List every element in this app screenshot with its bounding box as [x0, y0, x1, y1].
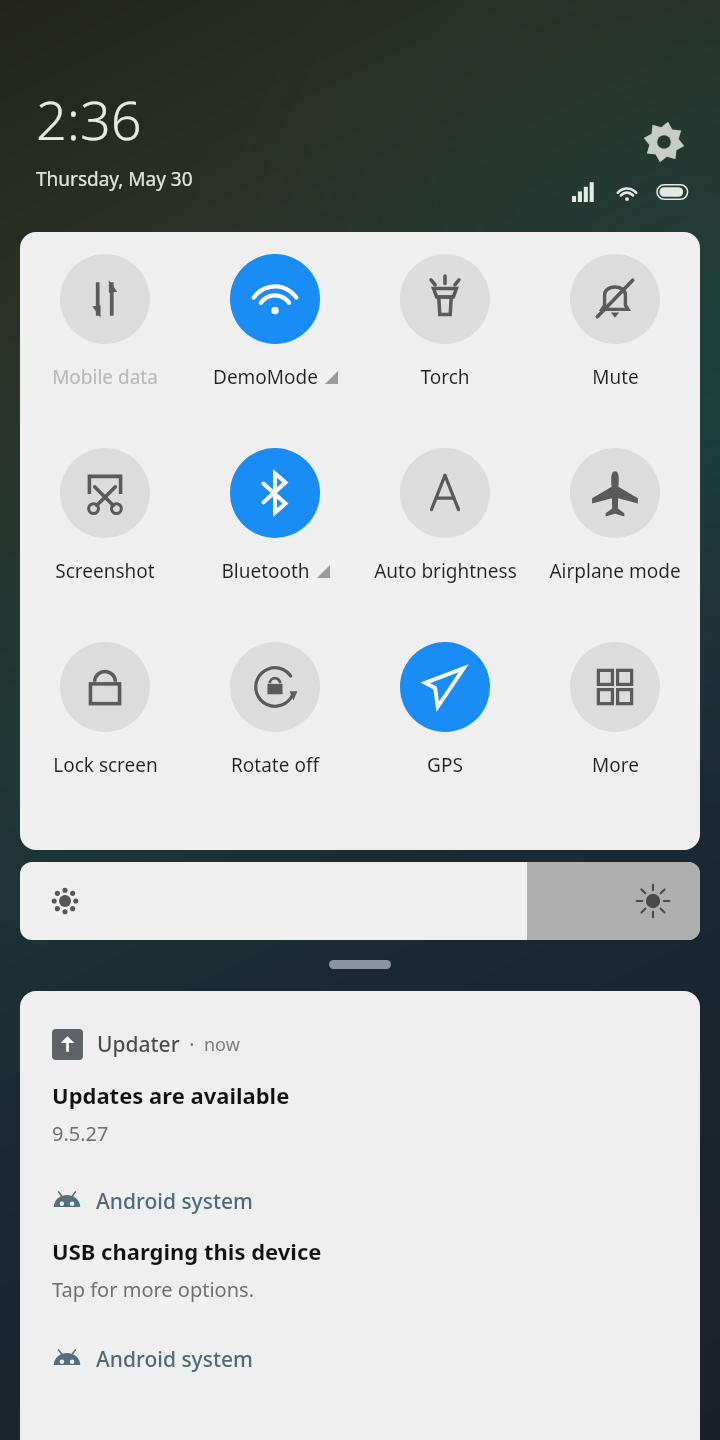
staticText: now	[204, 1032, 240, 1057]
staticText: Android system	[96, 1345, 253, 1374]
staticText: Mobile data	[52, 364, 158, 390]
button[interactable]	[360, 636, 530, 820]
button[interactable]: Brightness	[20, 862, 700, 940]
button[interactable]	[530, 442, 700, 626]
staticText: USB charging this device	[52, 1236, 322, 1266]
staticText: Lock screen	[53, 752, 158, 778]
button[interactable]: Android system	[52, 1187, 676, 1303]
button[interactable]	[20, 636, 190, 820]
staticText: Tap for more options.	[52, 1276, 254, 1303]
staticText: 9.5.27	[52, 1120, 109, 1147]
staticText: Torch	[420, 364, 470, 390]
button[interactable]: Expand	[329, 960, 391, 969]
staticText: GPS	[427, 752, 463, 778]
staticText: Mute	[592, 364, 639, 390]
button[interactable]	[20, 248, 190, 432]
staticText: ·	[189, 1030, 195, 1059]
staticText: Airplane mode	[549, 558, 681, 584]
button[interactable]	[360, 442, 530, 626]
button[interactable]	[360, 248, 530, 432]
staticText: Android system	[96, 1187, 253, 1216]
staticText: 2:36	[36, 82, 142, 156]
button[interactable]	[190, 442, 360, 626]
button[interactable]: Android system	[52, 1345, 676, 1374]
button[interactable]	[190, 636, 360, 820]
button[interactable]	[20, 442, 190, 626]
staticText: DemoMode	[213, 364, 318, 390]
button[interactable]	[530, 248, 700, 432]
staticText: Updater	[97, 1030, 180, 1059]
staticText: Auto brightness	[374, 558, 517, 584]
staticText: Bluetooth	[221, 558, 310, 584]
button[interactable]	[530, 636, 700, 820]
staticText: Screenshot	[55, 558, 155, 584]
button[interactable]	[190, 248, 360, 432]
staticText: More	[592, 752, 639, 778]
staticText: Rotate off	[231, 752, 319, 778]
staticText: Thursday, May 30	[36, 166, 193, 192]
button[interactable]: Updater	[52, 1029, 676, 1147]
button[interactable]: Settings	[638, 116, 690, 168]
staticText: Updates are available	[52, 1080, 290, 1110]
